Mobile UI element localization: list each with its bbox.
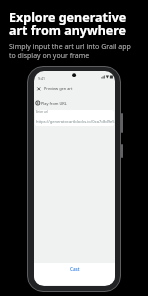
- button[interactable]: [35, 110, 114, 126]
- staticText: Preview gen art: [44, 86, 73, 91]
- staticText: art from anywhere: [9, 22, 127, 39]
- button[interactable]: Cast: [34, 263, 115, 285]
- staticText: Cast: [70, 266, 80, 272]
- staticText: Enter url: [36, 110, 48, 114]
- staticText: Explore generative: [9, 9, 127, 26]
- staticText: Play from URL: [41, 101, 67, 106]
- staticText: to display on your frame: [9, 51, 90, 61]
- button[interactable]: [34, 98, 115, 109]
- staticText: Simply input the art url into Grail app: [9, 42, 131, 52]
- button[interactable]: [34, 83, 115, 94]
- staticText: 9:41: [38, 76, 45, 81]
- staticText: https://generator.artblocks.io/0xa7c8d9e…: [36, 119, 115, 124]
